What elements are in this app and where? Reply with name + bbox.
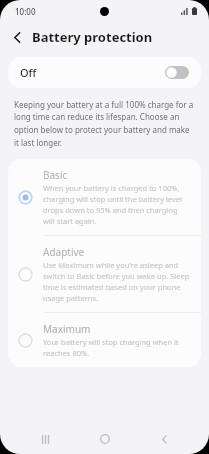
button[interactable]: Off: [8, 57, 201, 88]
staticText: When your battery is charged to 100%, ch…: [43, 183, 190, 226]
button[interactable]: Back: [149, 424, 179, 454]
staticText: Off: [20, 65, 37, 80]
staticText: Maximum: [43, 322, 91, 336]
staticText: Adaptive: [43, 245, 85, 259]
button[interactable]: Maximum: [8, 313, 201, 367]
button[interactable]: Adaptive: [8, 236, 201, 312]
staticText: Use Maximum while you're asleep and swit…: [43, 260, 190, 303]
staticText: Basic: [43, 168, 68, 182]
button[interactable]: Basic: [8, 159, 201, 235]
staticText: Keeping your battery at a full 100% char…: [14, 99, 195, 148]
staticText: Battery protection: [32, 28, 153, 46]
button[interactable]: Home: [90, 424, 120, 454]
button[interactable]: Recents: [30, 424, 60, 454]
staticText: Your battery will stop charging when it …: [43, 337, 190, 358]
button[interactable]: Navigate up: [5, 25, 29, 49]
staticText: 10:00: [15, 6, 36, 17]
